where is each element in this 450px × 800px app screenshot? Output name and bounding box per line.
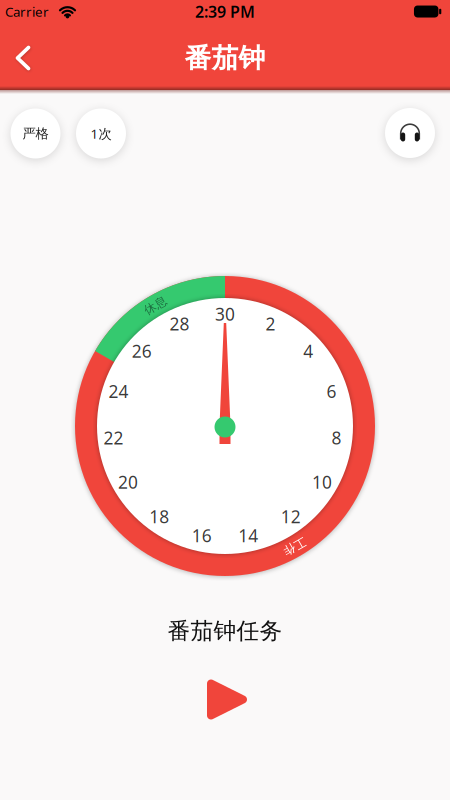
staticText: 番茄钟 <box>184 42 265 74</box>
staticText: 休息 <box>143 298 167 313</box>
staticText: 20 <box>118 470 138 493</box>
staticText: 8 <box>331 426 341 449</box>
staticText: 10 <box>312 470 332 493</box>
staticText: 18 <box>149 505 169 528</box>
staticText: 30 <box>215 302 235 325</box>
button[interactable] <box>3 38 43 78</box>
staticText: 6 <box>326 380 336 403</box>
staticText: 严格 <box>22 125 48 142</box>
staticText: 26 <box>132 339 152 362</box>
button[interactable]: 1次 <box>76 108 126 158</box>
staticText: 番茄钟任务 <box>167 617 282 645</box>
staticText: 16 <box>192 524 212 547</box>
button[interactable]: 严格 <box>10 108 60 158</box>
button[interactable] <box>385 108 435 158</box>
staticText: 12 <box>281 505 301 528</box>
staticText: 22 <box>104 426 124 449</box>
staticText: 4 <box>303 339 313 362</box>
staticText: 28 <box>169 312 189 335</box>
staticText: 2:39 PM <box>195 1 255 22</box>
button[interactable] <box>202 675 250 723</box>
staticText: 工作 <box>282 539 306 554</box>
staticText: 24 <box>108 380 128 403</box>
staticText: 1次 <box>90 125 111 142</box>
staticText: 2 <box>266 312 276 335</box>
staticText: 14 <box>238 524 258 547</box>
staticText: Carrier <box>5 3 49 20</box>
